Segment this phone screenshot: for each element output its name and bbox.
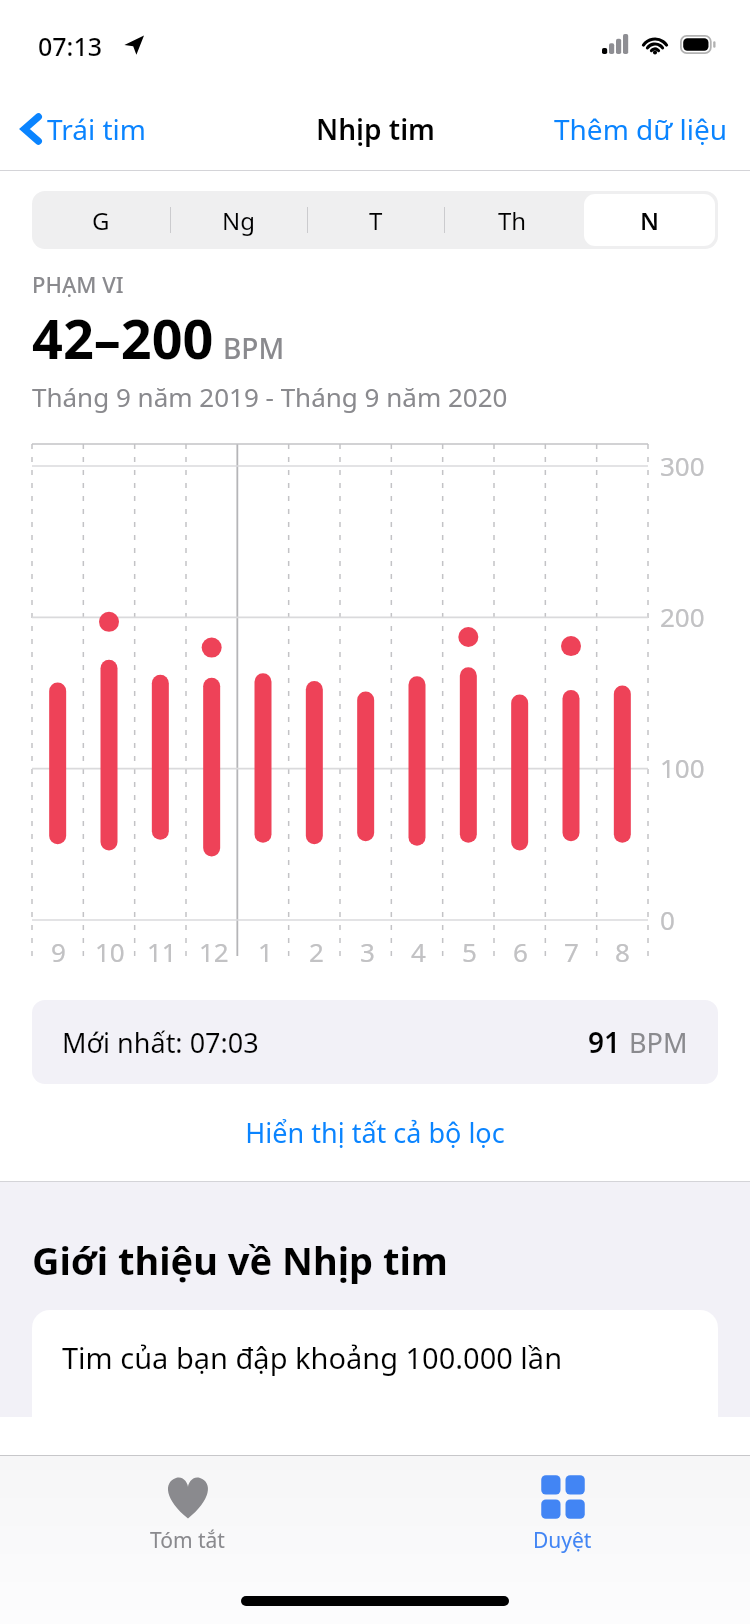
staticText: 200 [660,599,705,634]
staticText: 2 [309,934,324,969]
staticText: Duyệt [533,1526,592,1555]
staticText: Hiển thị tất cả bộ lọc [245,1114,505,1151]
staticText: 1 [258,934,273,969]
button[interactable]: Duyệt [375,1468,750,1559]
staticText: Thêm dữ liệu [554,110,728,148]
button[interactable]: Th [447,194,578,246]
staticText: Ng [222,204,255,237]
staticText: 9 [51,934,66,969]
other: Tóm tắt [163,1472,213,1522]
button[interactable]: T [310,194,441,246]
staticText: 0 [660,902,675,937]
button[interactable]: Mới nhất: 07:03 [32,1000,718,1084]
staticText: 8 [615,934,630,969]
staticText: G [92,204,110,237]
button[interactable]: Ng [173,194,304,246]
staticText: 7 [564,934,579,969]
staticText: PHẠM VI [32,269,124,299]
staticText: 07:13 [38,29,103,63]
button[interactable]: Tóm tắt [0,1468,375,1559]
staticText: 100 [660,750,705,785]
staticText: 10 [95,934,125,969]
button[interactable]: G [35,194,167,246]
staticText: Tóm tắt [150,1526,225,1555]
staticText: BPM [629,1024,688,1061]
staticText: Tim của bạn đập khoảng 100.000 lần [62,1338,563,1377]
staticText: 5 [462,934,477,969]
staticText: Th [498,204,527,237]
staticText: Mới nhất: 07:03 [62,1024,259,1061]
button[interactable]: Thêm dữ liệu [532,100,750,158]
staticText: BPM [223,329,285,367]
button[interactable]: N [584,194,715,246]
staticText: 6 [513,934,528,969]
staticText: Trái tim [47,110,146,148]
staticText: Nhịp tim [316,110,435,148]
staticText: 11 [147,934,177,969]
staticText: 12 [199,934,229,969]
staticText: T [369,204,383,237]
staticText: 3 [360,934,375,969]
staticText: N [640,204,660,237]
staticText: Tháng 9 năm 2019 - Tháng 9 năm 2020 [32,379,508,414]
button[interactable]: Hiển thị tất cả bộ lọc [0,1110,750,1155]
staticText: 91 [588,1023,621,1061]
staticText: Giới thiệu về Nhịp tim [32,1234,448,1286]
staticText: 4 [411,934,426,969]
staticText: 42–200 [32,301,214,375]
button[interactable]: Trái tim [0,102,158,156]
staticText: 300 [660,448,705,483]
other: Duyệt [538,1472,588,1522]
